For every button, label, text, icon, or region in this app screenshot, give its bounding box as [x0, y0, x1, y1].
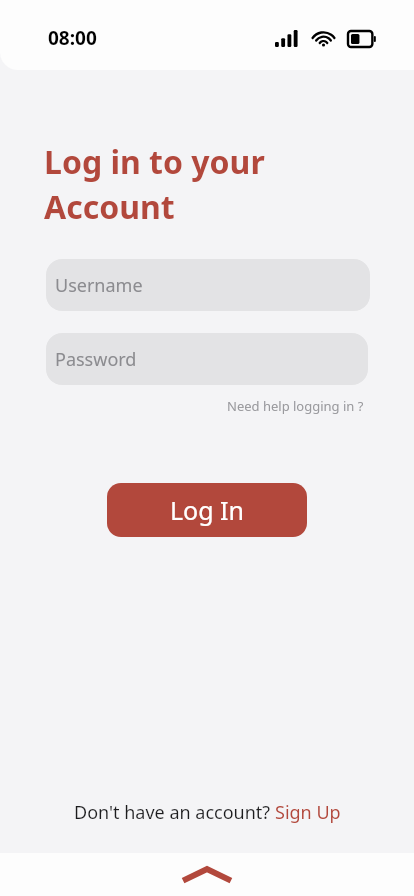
staticText: Need help logging in ?	[227, 397, 364, 415]
button[interactable]: Log In	[107, 483, 307, 537]
staticText: Log in to your Account	[44, 140, 265, 229]
button[interactable]: Password	[46, 333, 368, 385]
staticText: Password	[55, 347, 137, 372]
staticText: Sign Up	[275, 800, 341, 825]
staticText: 08:00	[48, 25, 97, 51]
staticText: Don't have an account?	[74, 800, 275, 825]
button[interactable]: Expand	[172, 857, 242, 893]
staticText: Username	[55, 273, 143, 298]
staticText: Log In	[170, 493, 245, 527]
button[interactable]: Username	[46, 259, 370, 311]
button[interactable]: Need help logging in ?	[227, 397, 364, 415]
button[interactable]: Sign Up	[275, 800, 341, 825]
